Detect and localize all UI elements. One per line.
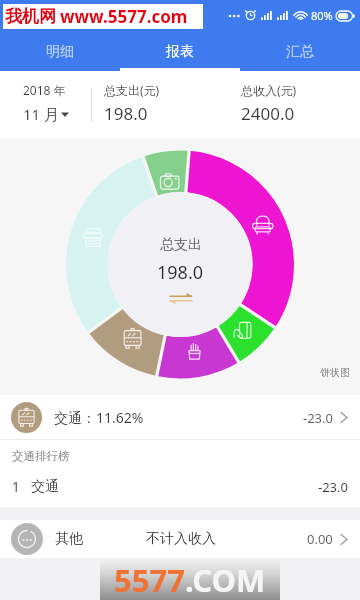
staticText: 总支出(元) [104,82,160,98]
staticText: 交通 [31,478,59,496]
staticText: 11 月 [23,104,60,124]
staticText: 我机网 [5,6,56,27]
button[interactable]: 汇总 [240,30,360,71]
staticText: 总收入(元) [241,82,297,98]
staticText: 汇总 [286,43,314,61]
button[interactable]: 其他 [0,520,360,558]
button[interactable]: 2018 年 [23,82,69,124]
button[interactable]: 报表 [120,30,240,71]
staticText: 总支出 [160,236,202,254]
button[interactable]: 交通：11.62% [0,395,360,440]
staticText: .COM [185,559,266,598]
button[interactable]: 1 [0,475,360,499]
staticText: 交通排行榜 [12,449,70,463]
staticText: 80% [311,8,333,23]
staticText: 198.0 [157,260,204,285]
staticText: -23.0 [318,478,348,496]
staticText: 1 [12,478,20,496]
staticText: 2018 年 [23,82,66,98]
staticText: 0.00 [307,530,333,548]
staticText: 明细 [46,43,74,61]
staticText: 其他 [55,530,83,548]
staticText: 不计入收入 [146,530,216,548]
staticText: 5577 [114,559,185,598]
staticText: www.5577.com [60,5,188,28]
staticText: -23.0 [303,409,333,427]
staticText: 交通：11.62% [54,408,144,427]
button[interactable]: 明细 [0,30,120,71]
staticText: 2400.0 [241,102,295,125]
staticText: 198.0 [104,102,148,125]
staticText: 饼状图 [320,366,350,379]
staticText: 报表 [166,43,194,61]
